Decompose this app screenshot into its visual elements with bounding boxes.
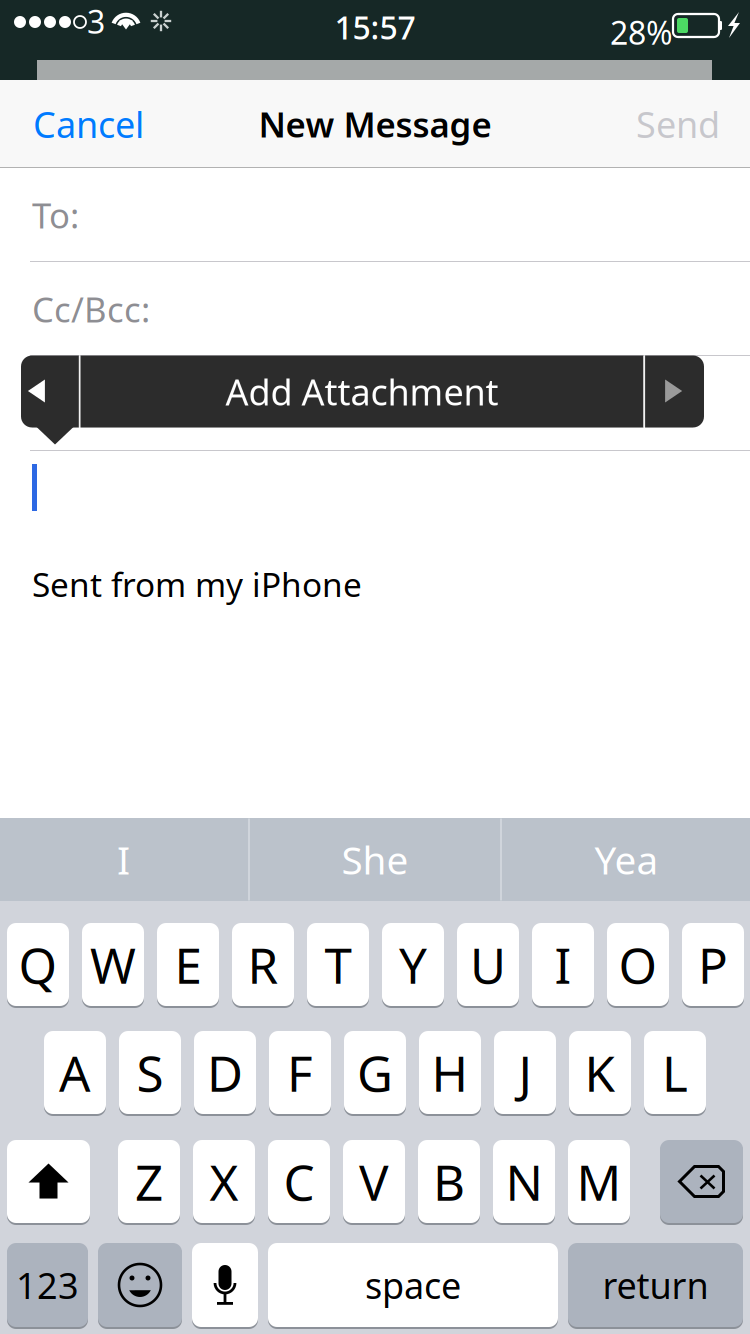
staticText: 3 (87, 0, 105, 42)
button[interactable]: Emoji keyboard (98, 1242, 182, 1328)
staticText: N (505, 1149, 542, 1214)
button[interactable]: J (494, 1030, 556, 1115)
button[interactable]: T (307, 922, 369, 1007)
staticText: Sent from my iPhone (32, 562, 362, 606)
button[interactable]: Add Attachment (80, 355, 643, 427)
staticText: G (357, 1040, 393, 1105)
staticText: M (576, 1149, 621, 1214)
staticText: To: (32, 192, 79, 238)
button[interactable]: Q (7, 922, 69, 1007)
staticText: D (207, 1040, 243, 1105)
staticText: 15:57 (334, 6, 415, 48)
button[interactable]: Delete (660, 1139, 743, 1224)
staticText: Add Attachment (225, 368, 498, 415)
button[interactable]: X (193, 1139, 255, 1224)
staticText: R (247, 932, 278, 997)
button[interactable]: Send (614, 80, 750, 168)
button[interactable]: space (268, 1242, 558, 1328)
button[interactable]: I (0, 818, 248, 901)
button[interactable]: K (569, 1030, 631, 1115)
staticText: B (433, 1149, 465, 1214)
button[interactable]: C (268, 1139, 330, 1224)
staticText: H (431, 1040, 468, 1105)
staticText: V (359, 1149, 389, 1214)
staticText: space (365, 1261, 461, 1309)
button[interactable]: 123 (7, 1242, 88, 1328)
button[interactable]: L (644, 1030, 706, 1115)
button[interactable]: S (119, 1030, 181, 1115)
button[interactable]: M (568, 1139, 630, 1224)
staticText: A (59, 1040, 91, 1105)
button[interactable]: Y (382, 922, 444, 1007)
staticText: E (174, 932, 201, 997)
staticText: She (341, 834, 408, 885)
staticText: J (518, 1040, 531, 1105)
button[interactable]: R (232, 922, 294, 1007)
button[interactable]: E (157, 922, 219, 1007)
button[interactable]: She (250, 818, 500, 901)
staticText: Cancel (33, 100, 144, 148)
staticText: Cc/Bcc: (32, 286, 150, 332)
button[interactable]: W (82, 922, 144, 1007)
button[interactable]: O (607, 922, 669, 1007)
button[interactable]: F (269, 1030, 331, 1115)
button[interactable]: B (418, 1139, 480, 1224)
staticText: Q (18, 932, 57, 997)
staticText: S (136, 1040, 163, 1105)
staticText: New Message (258, 101, 491, 147)
staticText: F (287, 1040, 313, 1105)
staticText: T (324, 932, 351, 997)
button[interactable]: G (344, 1030, 406, 1115)
button[interactable]: D (194, 1030, 256, 1115)
button[interactable]: Previous (21, 355, 79, 427)
staticText: 123 (16, 1261, 79, 1309)
button[interactable]: I (532, 922, 594, 1007)
staticText: Yea (594, 834, 658, 885)
staticText: X (209, 1149, 238, 1214)
staticText: Y (399, 932, 427, 997)
staticText: I (117, 834, 130, 885)
staticText: P (698, 932, 728, 997)
button[interactable]: return (568, 1242, 743, 1328)
button[interactable]: P (682, 922, 744, 1007)
button[interactable]: H (419, 1030, 481, 1115)
button[interactable]: Z (118, 1139, 180, 1224)
button[interactable]: Yea (502, 818, 750, 901)
button[interactable]: N (493, 1139, 555, 1224)
button[interactable]: U (457, 922, 519, 1007)
staticText: Send (636, 100, 720, 148)
staticText: L (662, 1040, 688, 1105)
staticText: W (90, 932, 136, 997)
button[interactable]: V (343, 1139, 405, 1224)
staticText: return (602, 1261, 708, 1309)
staticText: I (554, 932, 571, 997)
staticText: C (283, 1149, 314, 1214)
staticText: Z (135, 1149, 163, 1214)
button[interactable]: Next (645, 355, 704, 427)
staticText: 28% (610, 11, 673, 53)
button[interactable]: Shift (7, 1139, 90, 1224)
staticText: K (584, 1040, 615, 1105)
button[interactable]: Dictation (192, 1242, 258, 1328)
staticText: U (470, 932, 506, 997)
staticText: O (618, 932, 657, 997)
button[interactable]: Cancel (0, 80, 166, 168)
button[interactable]: A (44, 1030, 106, 1115)
